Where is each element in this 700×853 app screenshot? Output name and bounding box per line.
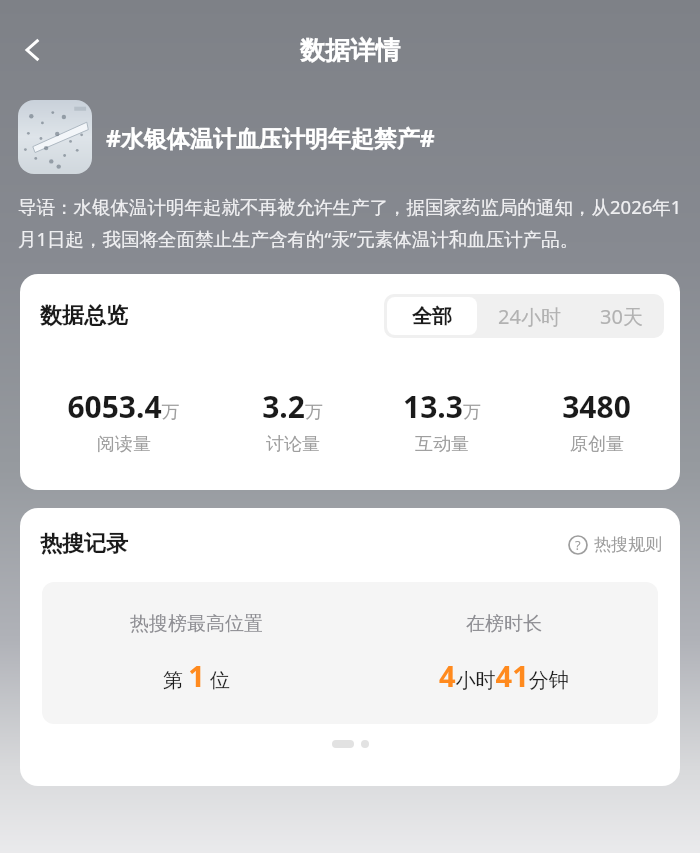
- staticText: 6053.4万: [67, 386, 180, 427]
- button[interactable]: ?: [568, 534, 662, 555]
- staticText: 热搜榜最高位置: [130, 612, 263, 636]
- staticText: 24小时: [498, 303, 561, 330]
- staticText: 阅读量: [97, 433, 151, 456]
- button[interactable]: 13.3万: [364, 386, 519, 456]
- button[interactable]: 全部: [387, 297, 477, 335]
- button[interactable]: 3.2万: [221, 386, 364, 456]
- staticText: 3.2万: [262, 386, 323, 427]
- staticText: 讨论量: [266, 433, 320, 456]
- staticText: 原创量: [570, 433, 624, 456]
- staticText: 互动量: [415, 433, 469, 456]
- staticText: 30天: [600, 303, 643, 330]
- button[interactable]: 6053.4万: [26, 386, 221, 456]
- staticText: 3480: [562, 386, 631, 427]
- staticText: 第 1 位: [163, 656, 230, 695]
- button[interactable]: 30天: [578, 294, 664, 338]
- staticText: 热搜记录: [40, 530, 128, 558]
- button[interactable]: Topic image: [18, 100, 92, 174]
- staticText: 4小时41分钟: [439, 656, 569, 695]
- staticText: #水银体温计血压计明年起禁产#: [106, 122, 435, 153]
- button[interactable]: Back: [4, 21, 62, 79]
- staticText: 数据总览: [40, 302, 128, 330]
- staticText: ?: [575, 536, 581, 554]
- staticText: 数据详情: [300, 35, 400, 66]
- staticText: 全部: [412, 304, 452, 329]
- button[interactable]: 24小时: [480, 294, 578, 338]
- button[interactable]: 3480: [519, 386, 674, 456]
- staticText: 13.3万: [403, 386, 481, 427]
- staticText: 导语：水银体温计明年起就不再被允许生产了，据国家药监局的通知，从2026年1月1…: [18, 194, 688, 252]
- staticText: 在榜时长: [466, 612, 542, 636]
- staticText: 热搜规则: [594, 534, 662, 555]
